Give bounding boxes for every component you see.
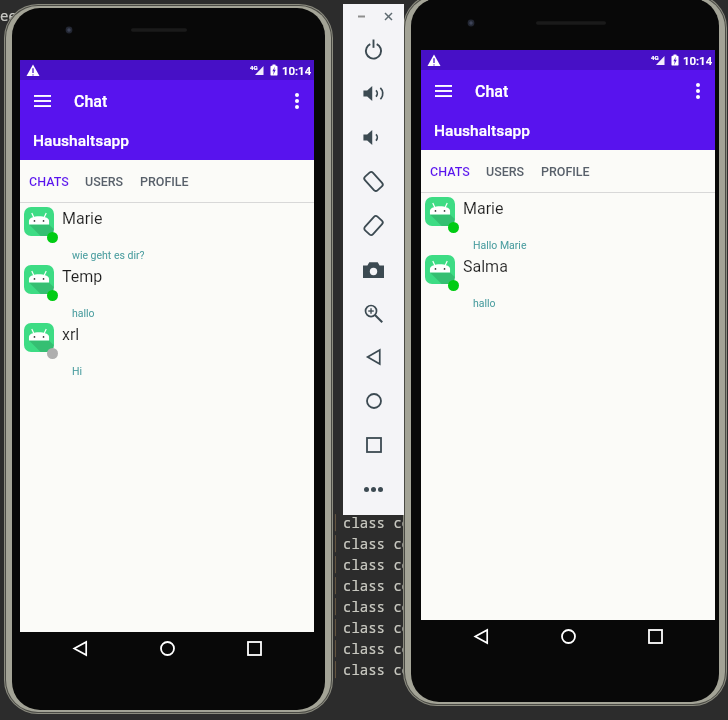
- button[interactable]: Home: [343, 379, 404, 423]
- button[interactable]: Back: [343, 335, 404, 379]
- staticText: │: [331, 618, 340, 637]
- staticText: Temp: [62, 267, 103, 286]
- button[interactable]: Back: [461, 620, 501, 653]
- staticText: 4G: [250, 64, 258, 71]
- button[interactable]: Back: [60, 632, 100, 665]
- button[interactable]: Zoom: [343, 291, 404, 335]
- button[interactable]: Volume down: [343, 115, 404, 159]
- staticText: CHATS: [29, 174, 69, 189]
- staticText: │: [331, 576, 340, 595]
- staticText: 10:14: [683, 54, 713, 67]
- button[interactable]: More options: [681, 74, 715, 108]
- button[interactable]: Power: [343, 27, 404, 71]
- staticText: class co: [343, 618, 411, 637]
- staticText: Hi: [72, 365, 83, 377]
- staticText: hallo: [473, 297, 496, 309]
- staticText: 4G: [651, 54, 659, 61]
- button[interactable]: Minimize: [354, 9, 368, 23]
- staticText: USERS: [85, 174, 124, 189]
- staticText: class co: [343, 513, 411, 532]
- staticText: hallo: [72, 307, 95, 319]
- staticText: Chat: [475, 82, 509, 101]
- staticText: Haushaltsapp: [434, 122, 531, 140]
- button[interactable]: Marie: [20, 207, 314, 265]
- staticText: 10:14: [282, 64, 312, 77]
- button[interactable]: Close: [381, 9, 395, 23]
- button[interactable]: PROFILE: [533, 150, 598, 192]
- button[interactable]: Salma: [421, 255, 715, 313]
- staticText: PROFILE: [541, 164, 590, 179]
- staticText: Salma: [463, 257, 508, 276]
- button[interactable]: More options: [280, 84, 314, 118]
- staticText: class co: [343, 534, 411, 553]
- staticText: xrl: [62, 325, 80, 344]
- button[interactable]: Home: [548, 620, 588, 653]
- button[interactable]: Marie: [421, 197, 715, 255]
- button[interactable]: More: [343, 467, 404, 511]
- staticText: Marie: [62, 209, 103, 228]
- button[interactable]: Rotate right: [343, 203, 404, 247]
- button[interactable]: Open navigation drawer: [426, 74, 460, 108]
- staticText: │: [331, 513, 340, 532]
- staticText: class co: [343, 639, 411, 658]
- staticText: Hallo Marie: [473, 239, 527, 251]
- button[interactable]: Home: [147, 632, 187, 665]
- button[interactable]: Rotate left: [343, 159, 404, 203]
- staticText: PROFILE: [140, 174, 189, 189]
- button[interactable]: Recents: [234, 632, 274, 665]
- button[interactable]: CHATS: [21, 160, 77, 202]
- staticText: │: [331, 597, 340, 616]
- staticText: class co: [343, 597, 411, 616]
- button[interactable]: Take screenshot: [343, 247, 404, 291]
- staticText: │: [331, 660, 340, 679]
- button[interactable]: CHATS: [422, 150, 478, 192]
- staticText: CHATS: [430, 164, 470, 179]
- button[interactable]: USERS: [77, 160, 132, 202]
- button[interactable]: USERS: [478, 150, 533, 192]
- staticText: wie geht es dir?: [72, 249, 145, 261]
- staticText: class co: [343, 660, 411, 679]
- staticText: class co: [343, 576, 411, 595]
- button[interactable]: Recents: [635, 620, 675, 653]
- button[interactable]: PROFILE: [132, 160, 197, 202]
- staticText: Chat: [74, 92, 108, 111]
- staticText: │: [331, 534, 340, 553]
- staticText: Haushaltsapp: [33, 132, 130, 150]
- button[interactable]: Open navigation drawer: [25, 84, 59, 118]
- staticText: │: [331, 639, 340, 658]
- button[interactable]: Volume up: [343, 71, 404, 115]
- staticText: Marie: [463, 199, 504, 218]
- staticText: ee: [0, 6, 17, 25]
- staticText: │: [331, 555, 340, 574]
- staticText: USERS: [486, 164, 525, 179]
- button[interactable]: Temp: [20, 265, 314, 323]
- button[interactable]: xrl: [20, 323, 314, 381]
- staticText: class co: [343, 555, 411, 574]
- button[interactable]: Overview: [343, 423, 404, 467]
